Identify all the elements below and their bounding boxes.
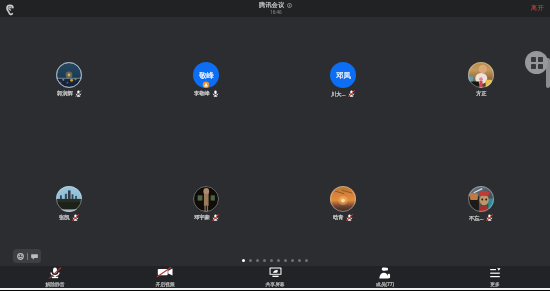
staticText: 解除静音 <box>45 281 65 287</box>
button[interactable]: 邓宇豪 <box>193 186 219 221</box>
button[interactable]: Share screen <box>220 266 330 288</box>
staticText: 腾讯会议 <box>259 1 285 9</box>
button[interactable]: Chat <box>28 249 41 263</box>
staticText: 共享屏幕 <box>265 281 285 287</box>
staticText: 张凯 <box>59 214 70 221</box>
staticText: 川大… <box>331 90 346 97</box>
button[interactable]: Switch to grid view <box>525 51 548 74</box>
staticText: 敬峰 <box>199 71 214 80</box>
staticText: 邓宇豪 <box>194 214 210 221</box>
button[interactable]: 晗青 <box>330 186 356 221</box>
staticText: 离开 <box>531 4 544 12</box>
button[interactable]: 张凯 <box>56 186 82 221</box>
staticText: 更多 <box>490 281 500 287</box>
button[interactable]: Start video <box>110 266 220 288</box>
button[interactable]: Speaker <box>2 1 18 17</box>
button[interactable]: 敬峰 <box>193 62 219 97</box>
staticText: 开启视频 <box>155 281 175 287</box>
button[interactable]: 不忘… <box>468 186 494 221</box>
button[interactable]: Unmute <box>0 266 110 288</box>
staticText: 李敬峰 <box>194 90 210 97</box>
staticText: 邓凤 <box>336 71 351 80</box>
button[interactable]: 郭润辉 <box>56 62 82 97</box>
button[interactable]: Emoji reactions <box>13 249 27 263</box>
button[interactable]: 离开 <box>531 0 544 17</box>
staticText: 方正 <box>476 90 487 97</box>
button[interactable]: 邓凤 <box>330 62 356 97</box>
staticText: 晗青 <box>333 214 344 221</box>
button[interactable]: More <box>440 266 550 288</box>
staticText: 郭润辉 <box>57 90 73 97</box>
button[interactable]: Participants <box>330 266 440 288</box>
staticText: 不忘… <box>469 214 484 221</box>
staticText: 16:46 <box>270 9 282 15</box>
staticText: 成员(77) <box>376 281 394 288</box>
button[interactable]: 方正 <box>468 62 494 97</box>
